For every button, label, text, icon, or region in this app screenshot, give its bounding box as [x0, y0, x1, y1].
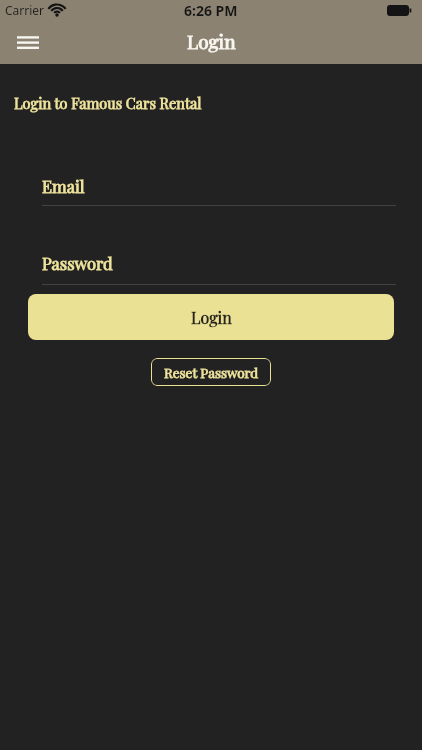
staticText: Email	[42, 175, 85, 197]
button[interactable]: Reset Password	[151, 358, 271, 386]
staticText: Password	[42, 252, 113, 274]
button[interactable]	[12, 26, 44, 58]
button[interactable]: Login	[28, 294, 394, 340]
staticText: Login	[191, 307, 232, 328]
staticText: Carrier	[5, 2, 45, 18]
staticText: Login	[187, 28, 236, 53]
staticText: 6:26 PM	[184, 1, 238, 20]
staticText: Login to Famous Cars Rental	[14, 93, 202, 112]
staticText: Reset Password	[164, 363, 259, 381]
